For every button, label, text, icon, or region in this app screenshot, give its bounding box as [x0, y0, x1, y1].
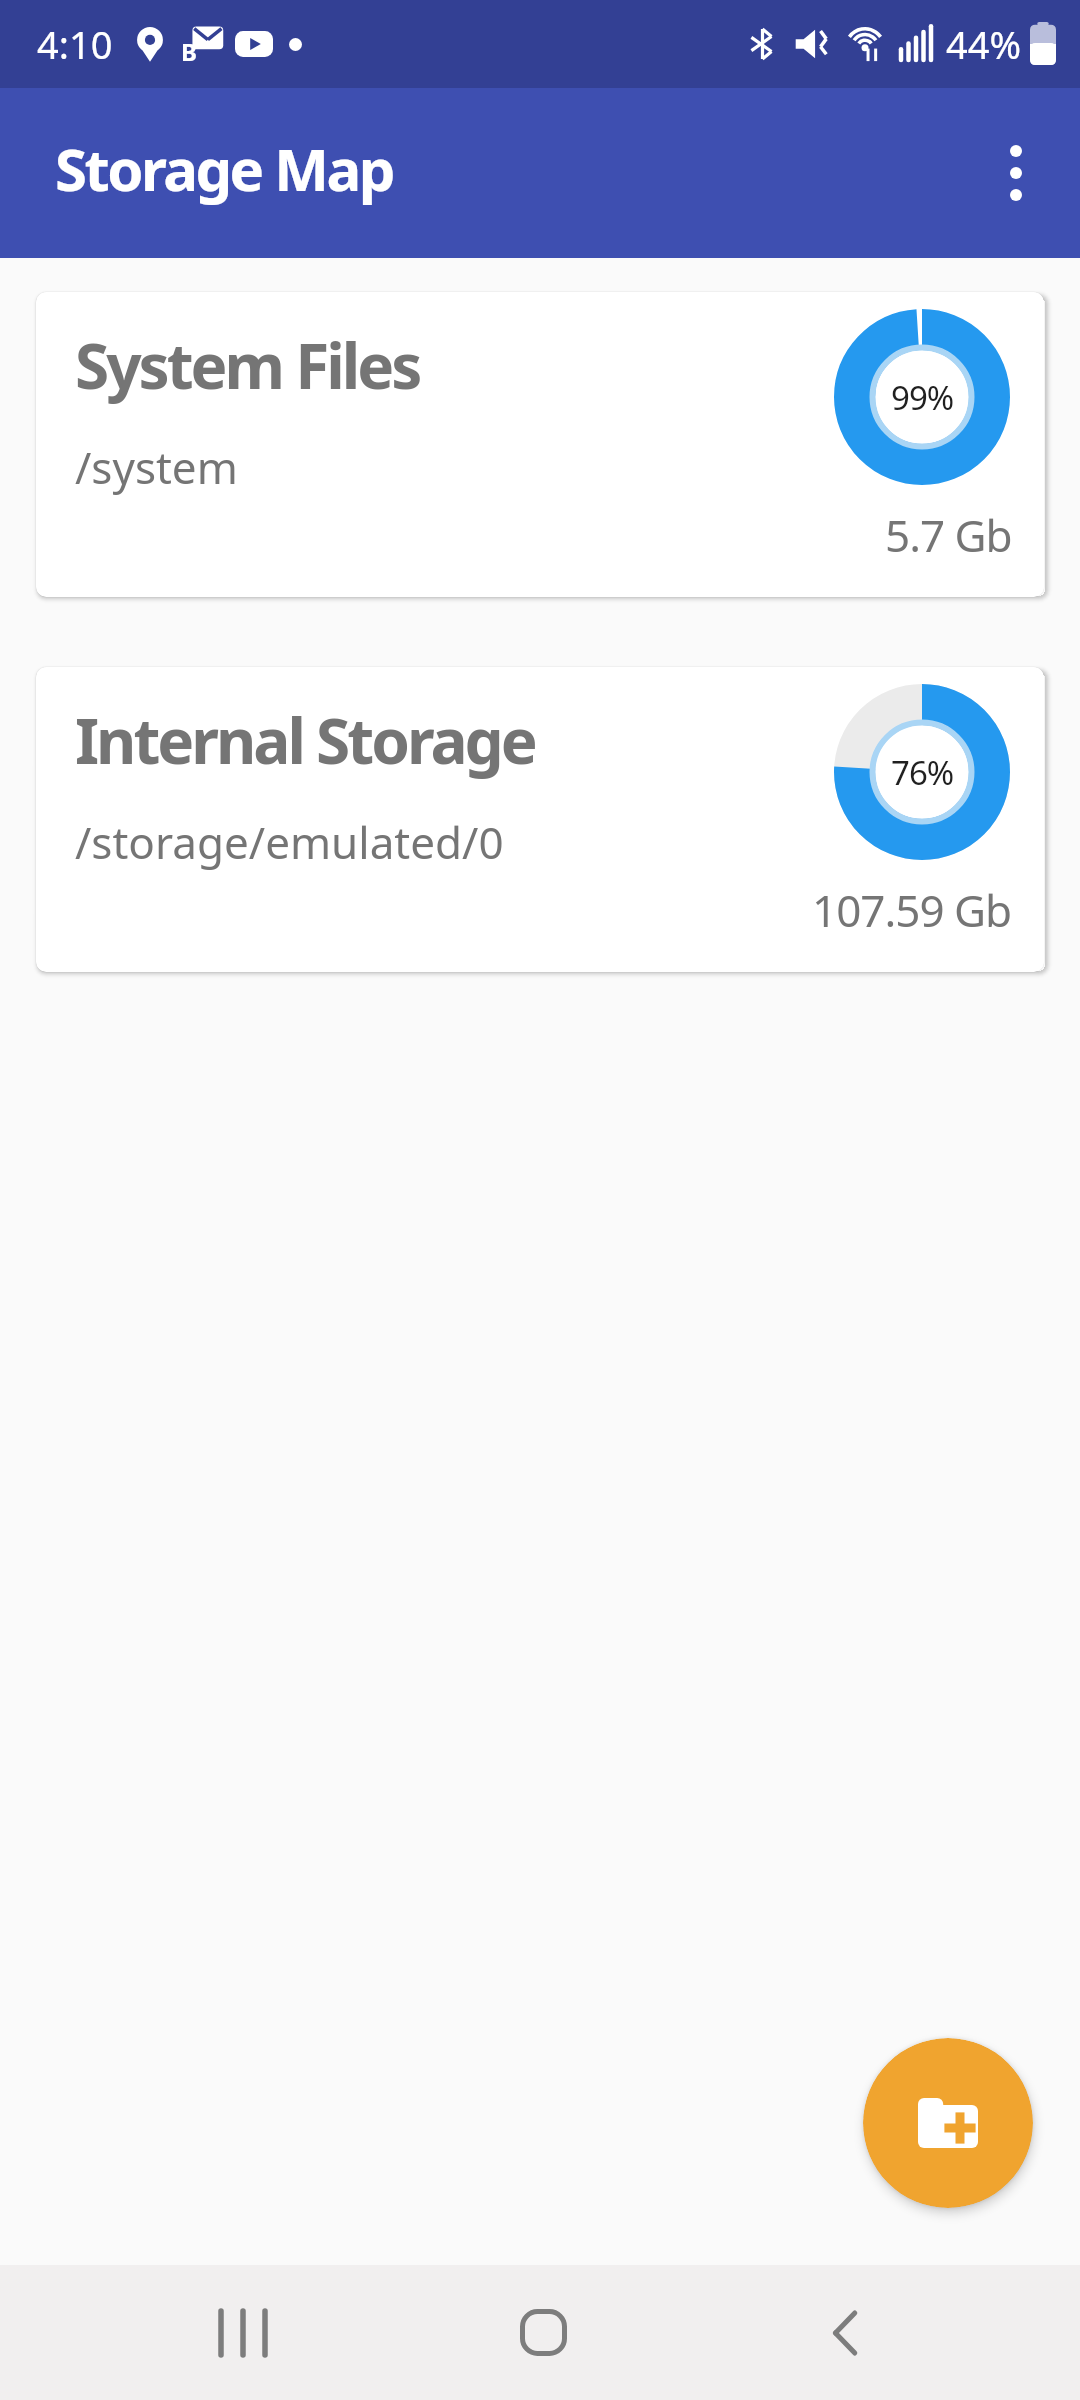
- staticText: 44%: [946, 18, 1022, 70]
- staticText: 107.59 Gb: [812, 880, 1012, 940]
- button[interactable]: [781, 2265, 911, 2400]
- staticText: Internal Storage: [75, 698, 535, 782]
- button[interactable]: [863, 2038, 1033, 2208]
- staticText: Storage Map: [55, 129, 393, 208]
- staticText: System Files: [75, 323, 420, 407]
- button[interactable]: Internal Storage: [36, 667, 1044, 972]
- staticText: 4:10: [37, 18, 113, 70]
- staticText: 5.7 Gb: [885, 505, 1012, 565]
- staticText: 99%: [891, 375, 954, 420]
- button[interactable]: [178, 2265, 308, 2400]
- button[interactable]: [478, 2265, 608, 2400]
- button[interactable]: [976, 133, 1056, 213]
- staticText: B: [181, 35, 197, 68]
- staticText: /system: [75, 437, 238, 497]
- staticText: 76%: [891, 750, 954, 795]
- button[interactable]: System Files: [36, 292, 1044, 597]
- staticText: /storage/emulated/0: [75, 812, 504, 872]
